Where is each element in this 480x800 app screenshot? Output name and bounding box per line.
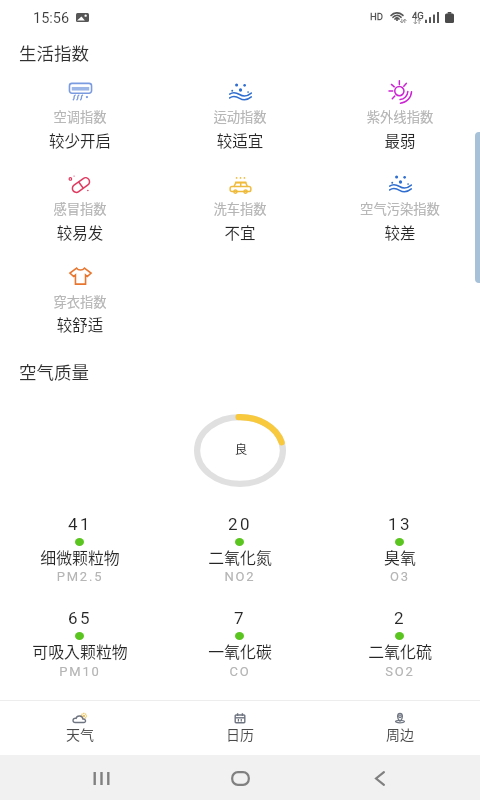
staticText: 良 [121,439,361,457]
staticText: 日历 [120,724,360,744]
staticText: 空调指数 [0,107,200,126]
staticText: SO2 [280,664,480,679]
staticText: 空气污染指数 [280,199,480,218]
button[interactable] [340,167,460,239]
button[interactable] [180,167,300,239]
staticText: 4G [412,10,424,21]
button[interactable]: Back [360,766,400,790]
staticText: 较少开启 [0,129,200,151]
staticText: 不宜 [120,221,360,243]
staticText: 洗车指数 [120,199,360,218]
button[interactable] [340,510,460,580]
staticText: 20 [120,514,360,534]
staticText: 65 [0,608,200,628]
staticText: 一氧化碳 [120,640,360,663]
staticText: 15:56 [33,10,70,27]
staticText: CO [120,664,360,679]
button[interactable] [25,702,135,752]
staticText: 7 [120,608,360,628]
staticText: 空气质量 [19,359,89,384]
button[interactable] [20,604,140,674]
button[interactable] [180,604,300,674]
staticText: 周边 [280,724,480,744]
staticText: 最弱 [280,129,480,151]
staticText: 较差 [280,221,480,243]
button[interactable] [20,259,140,331]
staticText: 2 [280,608,480,628]
staticText: 天气 [0,724,200,744]
button[interactable] [20,75,140,147]
staticText: O3 [280,569,480,584]
staticText: 穿衣指数 [0,292,200,311]
staticText: 13 [280,514,480,534]
staticText: NO2 [120,569,360,584]
staticText: 二氧化硫 [280,640,480,663]
button[interactable] [20,167,140,239]
button[interactable] [340,75,460,147]
staticText: 细微颗粒物 [0,546,200,569]
staticText: PM2.5 [0,569,200,584]
button[interactable] [180,510,300,580]
staticText: HD [370,11,384,22]
staticText: 较舒适 [0,313,200,335]
staticText: 生活指数 [19,40,89,65]
button[interactable] [185,702,295,752]
staticText: PM10 [0,664,200,679]
button[interactable] [345,702,455,752]
staticText: 二氧化氮 [120,546,360,569]
staticText: 41 [0,514,200,534]
staticText: 紫外线指数 [280,107,480,126]
staticText: 感冒指数 [0,199,200,218]
button[interactable] [340,604,460,674]
staticText: 较适宜 [120,129,360,151]
button[interactable]: Recent apps [80,766,120,790]
button[interactable] [20,510,140,580]
button[interactable]: Home [220,766,260,790]
staticText: 可吸入颗粒物 [0,640,200,663]
staticText: 较易发 [0,221,200,243]
staticText: 运动指数 [120,107,360,126]
button[interactable] [180,75,300,147]
staticText: 臭氧 [280,546,480,569]
